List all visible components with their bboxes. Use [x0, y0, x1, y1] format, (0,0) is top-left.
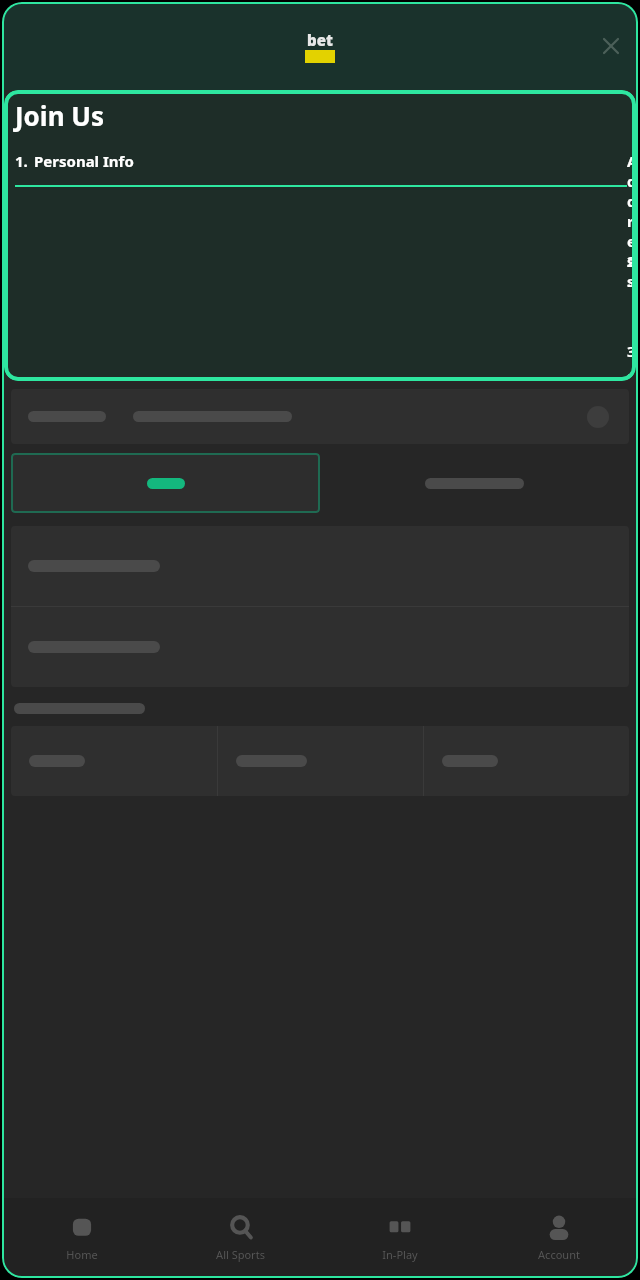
button[interactable]: All Sports: [161, 1198, 320, 1278]
staticText: 1.: [15, 151, 28, 171]
button[interactable]: Account: [479, 1198, 638, 1278]
button[interactable]: Mobile number: [11, 389, 629, 444]
staticText: bet: [307, 30, 333, 50]
button[interactable]: Female: [320, 453, 629, 513]
button[interactable]: Year: [424, 726, 629, 796]
staticText: All Sports: [216, 1247, 265, 1262]
button[interactable]: Last name: [11, 607, 629, 687]
button[interactable]: 1.: [15, 151, 627, 187]
button[interactable]: Month: [218, 726, 423, 796]
staticText: Account: [538, 1247, 580, 1262]
staticText: In-Play: [382, 1247, 418, 1262]
button[interactable]: Day: [11, 726, 217, 796]
staticText: Join Us: [15, 98, 104, 133]
staticText: Home: [66, 1247, 98, 1262]
button[interactable]: Home: [2, 1198, 161, 1278]
staticText: Personal Info: [34, 151, 134, 171]
button[interactable]: In-Play: [320, 1198, 479, 1278]
button[interactable]: First name: [11, 526, 629, 606]
button[interactable]: Close: [594, 29, 628, 63]
button[interactable]: Male: [11, 453, 320, 513]
